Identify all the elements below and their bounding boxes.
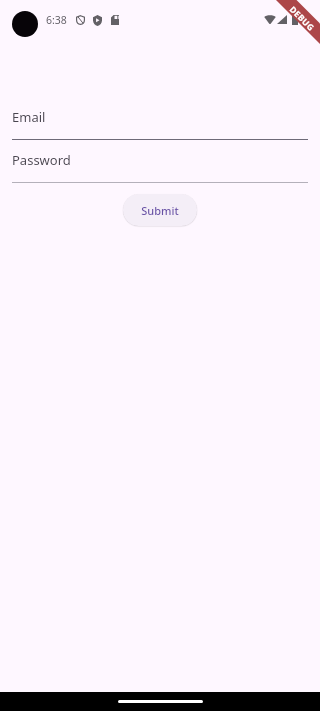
button[interactable]: Submit — [123, 194, 197, 226]
staticText: Password — [12, 151, 71, 169]
other: Debug banner — [0, 0, 320, 711]
staticText: Email — [12, 108, 46, 126]
staticText: DEBUG — [288, 4, 317, 33]
staticText: Submit — [141, 203, 179, 218]
staticText: 6:38 — [46, 13, 67, 27]
